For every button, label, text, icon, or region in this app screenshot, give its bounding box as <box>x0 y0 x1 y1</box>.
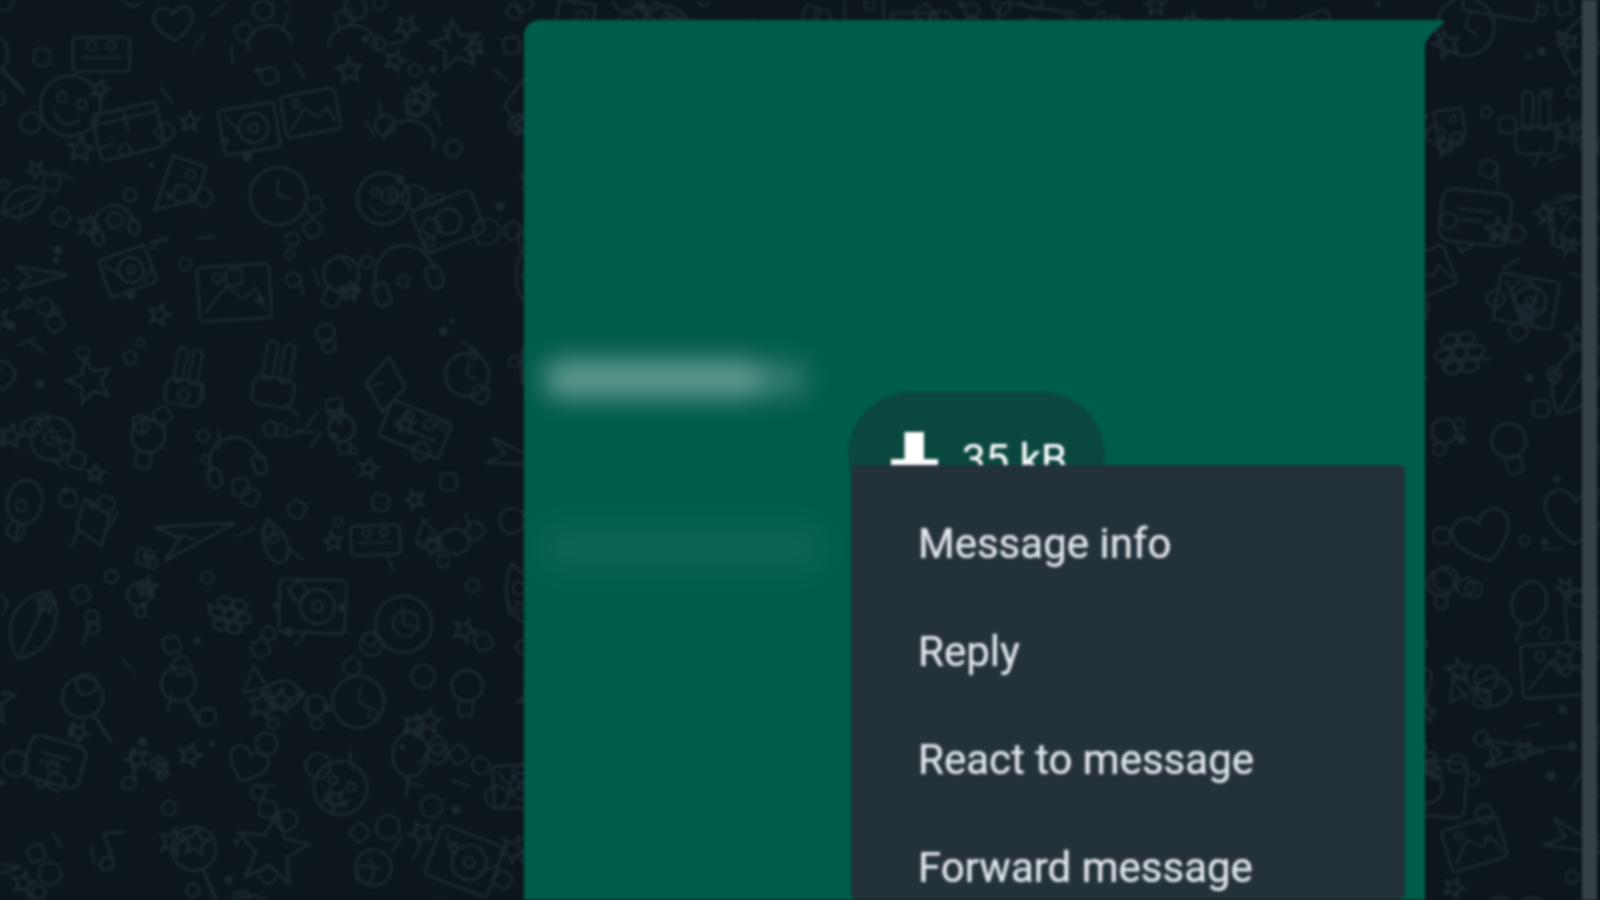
button[interactable]: React to message <box>851 701 1405 809</box>
button[interactable]: Forward message <box>851 809 1405 900</box>
staticText: Reply <box>918 627 1020 676</box>
button[interactable]: Scroll chat <box>1582 0 1597 900</box>
staticText: Message info <box>918 519 1172 568</box>
staticText: 35 kB <box>962 435 1068 484</box>
button[interactable]: Reply <box>851 593 1405 701</box>
button[interactable]: Download attachment, 35 kB <box>848 392 1105 518</box>
staticText: Forward message <box>918 843 1253 892</box>
staticText: React to message <box>918 735 1254 784</box>
button[interactable]: Message info <box>851 485 1405 593</box>
